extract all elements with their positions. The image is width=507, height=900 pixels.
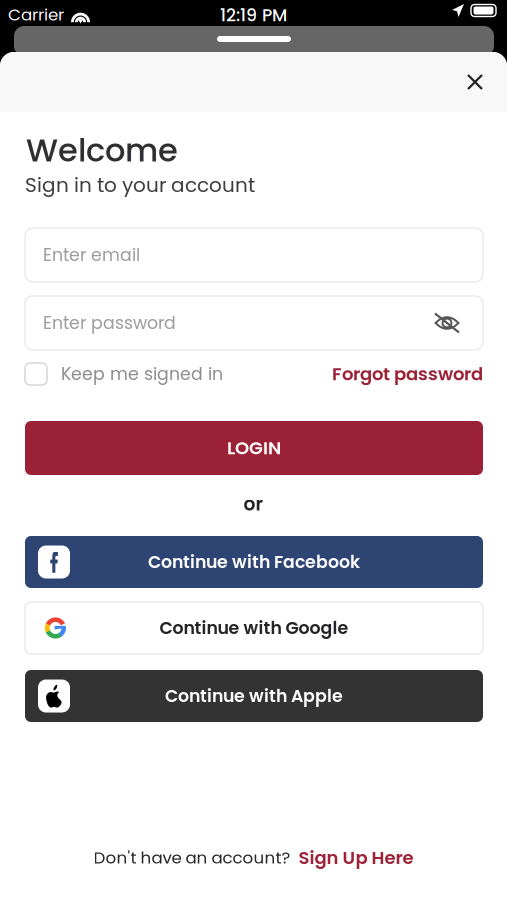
button[interactable]: Close [452,59,498,105]
staticText: Forgot password [332,361,483,387]
staticText: Enter password [43,311,176,335]
staticText: Carrier [8,3,64,26]
button[interactable]: Keep me signed in [25,362,223,386]
button[interactable]: Continue with Google [25,602,483,654]
staticText: or [243,491,263,517]
staticText: Continue with Apple [165,684,343,708]
staticText: Keep me signed in [61,362,223,386]
staticText: Continue with Google [159,616,348,640]
staticText: LOGIN [227,435,281,461]
staticText: Welcome [26,128,178,173]
button[interactable]: Forgot password [332,361,483,387]
button[interactable]: Show password [425,302,469,344]
staticText: Sign Up Here [298,845,413,870]
button[interactable]: Sign Up Here [298,845,413,870]
staticText: Enter email [43,243,140,267]
button[interactable]: LOGIN [25,421,483,475]
staticText: Continue with Facebook [148,550,360,574]
staticText: Don't have an account? [93,846,290,869]
staticText: Sign in to your account [25,171,255,199]
staticText: 12:19 PM [220,3,287,27]
button[interactable]: Continue with Facebook [25,536,483,588]
button[interactable]: Continue with Apple [25,670,483,722]
